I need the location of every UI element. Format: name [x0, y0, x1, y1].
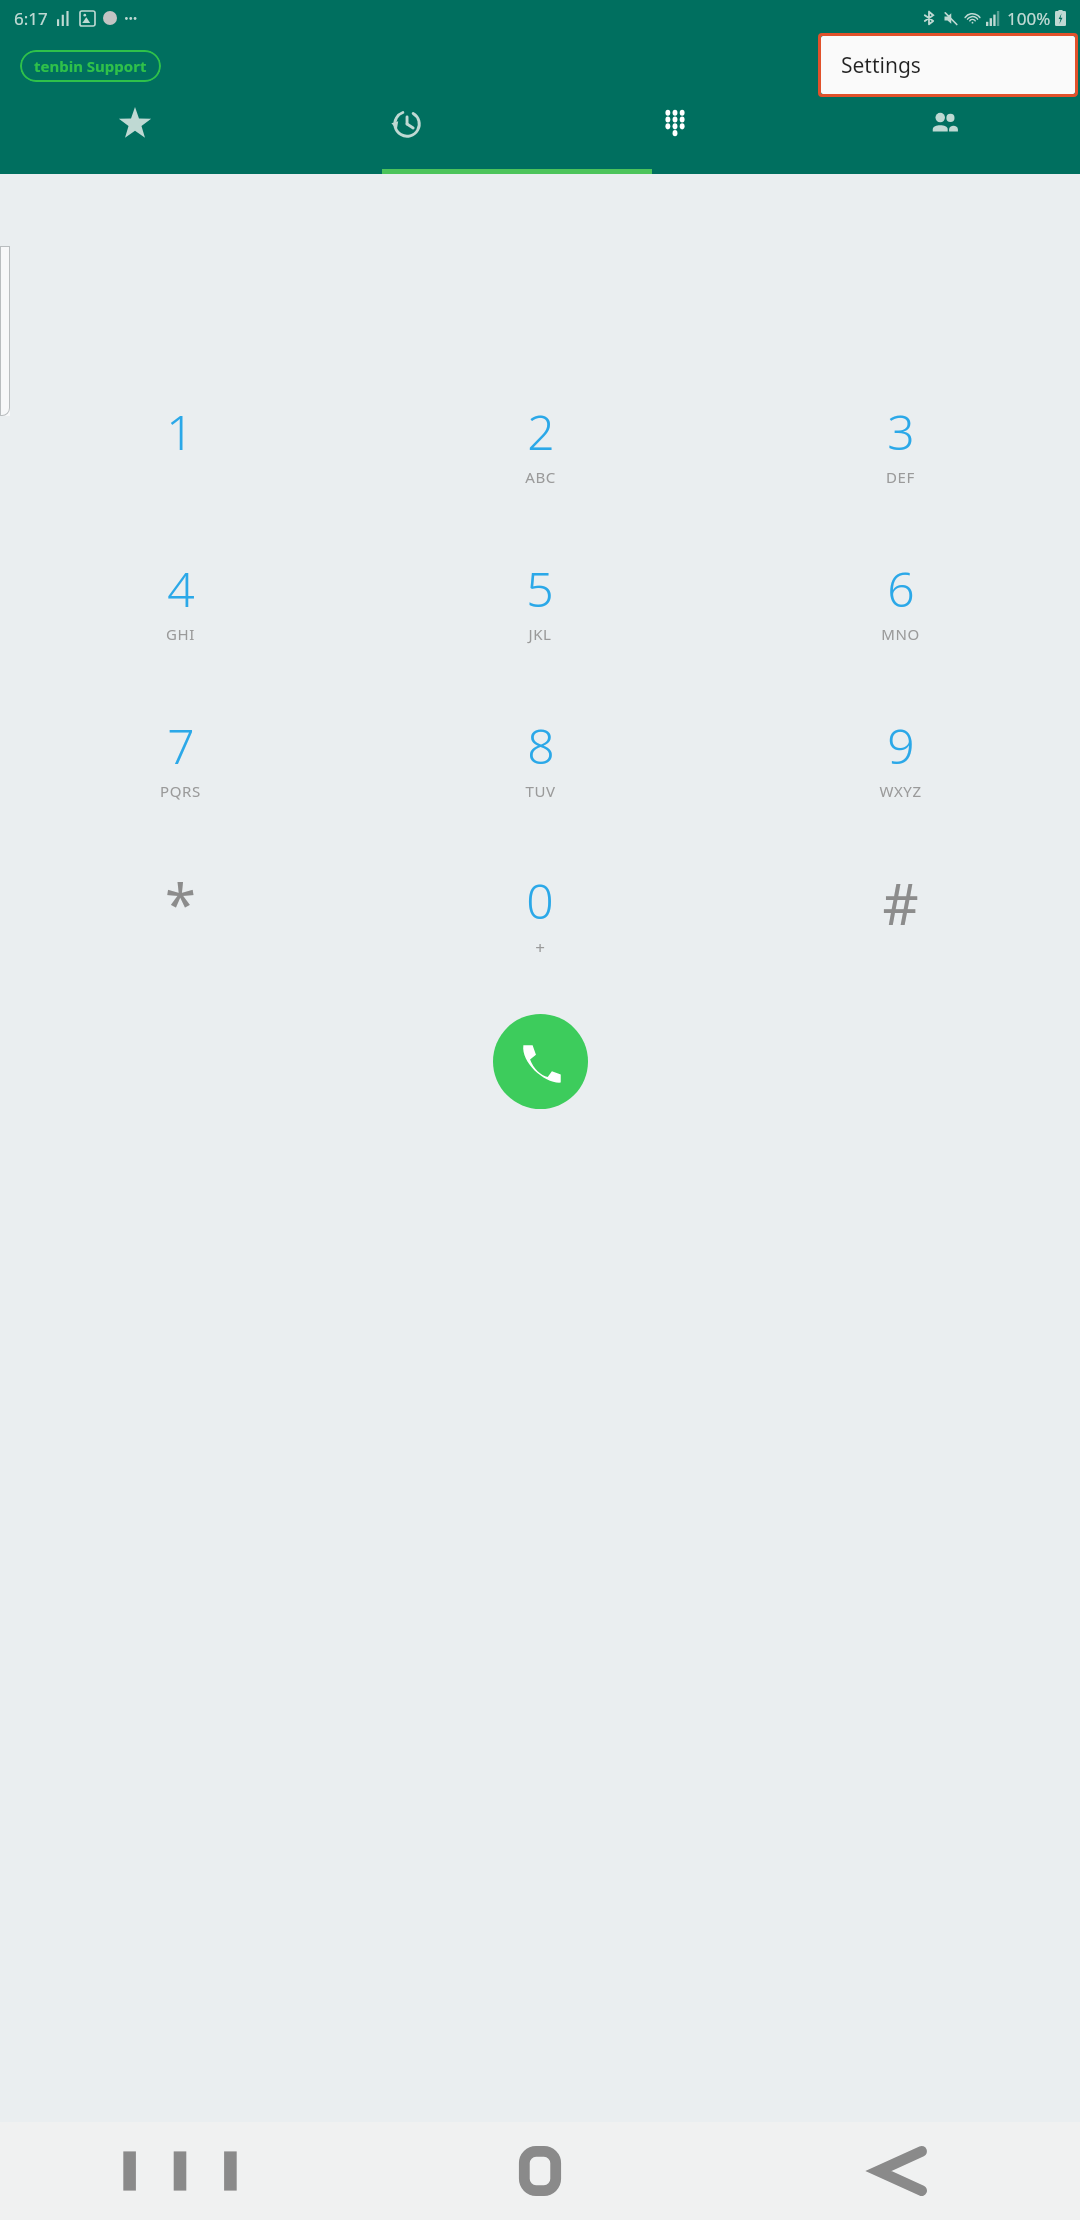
staticText: ABC [525, 467, 556, 487]
staticText: JKL [528, 624, 552, 644]
staticText: Settings [841, 51, 921, 80]
staticText: TUV [525, 781, 556, 801]
button[interactable]: Back [720, 2122, 1080, 2220]
button[interactable]: * [0, 835, 360, 992]
button[interactable]: 6 [720, 521, 1080, 678]
staticText: * [165, 865, 196, 941]
staticText: MNO [881, 624, 920, 644]
staticText: WXYZ [879, 781, 922, 801]
staticText: 4 [167, 556, 195, 621]
staticText: DEF [886, 467, 915, 487]
staticText: 0 [526, 868, 554, 933]
button[interactable]: Settings [821, 36, 1075, 94]
button[interactable]: Call [493, 1014, 588, 1109]
staticText: 3 [887, 399, 915, 464]
button[interactable]: 5 [360, 521, 720, 678]
staticText: 8 [527, 713, 555, 778]
button[interactable]: Favorites [0, 90, 270, 174]
button[interactable]: Recents [270, 90, 540, 174]
staticText: # [882, 865, 919, 941]
staticText: 9 [887, 713, 915, 778]
button[interactable]: 0 [360, 835, 720, 992]
staticText: PQRS [160, 781, 201, 801]
staticText: 6:17 [14, 7, 48, 30]
staticText: + [535, 936, 546, 959]
button[interactable]: 2 [360, 364, 720, 521]
staticText: 1 [166, 399, 194, 464]
button[interactable]: 8 [360, 678, 720, 835]
staticText: 7 [167, 713, 195, 778]
staticText: 2 [527, 399, 555, 464]
button[interactable]: Keypad [540, 90, 810, 174]
button[interactable]: 3 [720, 364, 1080, 521]
button[interactable]: 9 [720, 678, 1080, 835]
button[interactable]: Home [360, 2122, 720, 2220]
staticText: 6 [887, 556, 915, 621]
button[interactable]: 7 [0, 678, 360, 835]
button[interactable]: 4 [0, 521, 360, 678]
button[interactable]: tenbin Support [20, 50, 161, 82]
staticText: GHI [166, 624, 195, 644]
staticText: tenbin Support [34, 56, 147, 76]
staticText: 100% [1007, 7, 1051, 30]
staticText: 5 [526, 556, 554, 621]
button[interactable]: Contacts [810, 90, 1080, 174]
button[interactable]: # [720, 835, 1080, 992]
button[interactable]: 1 [0, 364, 360, 521]
button[interactable]: Recents [0, 2122, 360, 2220]
